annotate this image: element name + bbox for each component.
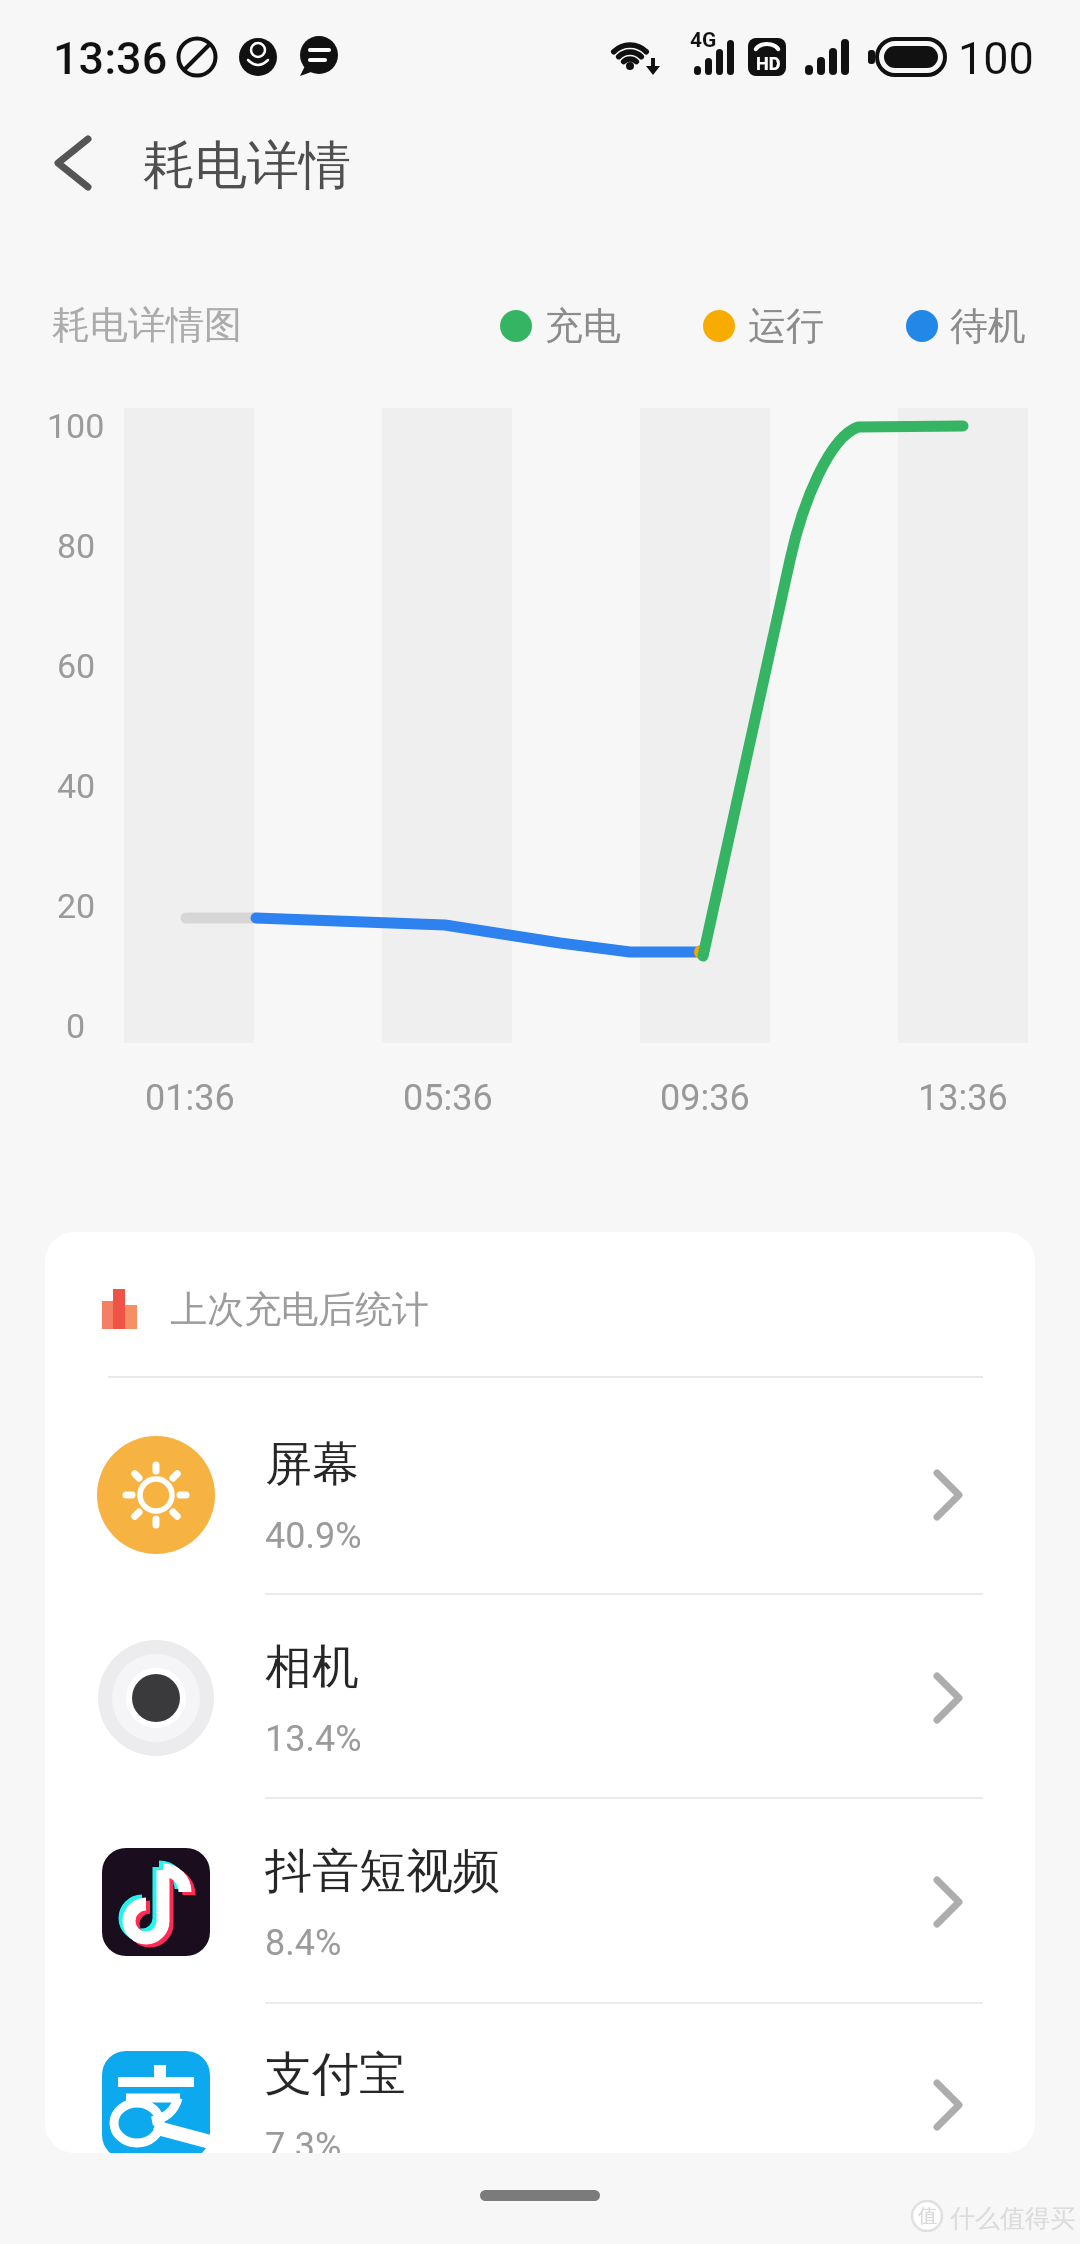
button[interactable] xyxy=(40,125,110,201)
staticText: 上次充电后统计 xyxy=(170,1286,429,1333)
staticText: 运行 xyxy=(748,302,824,350)
staticText: 13:36 xyxy=(53,32,168,82)
staticText: 05:36 xyxy=(403,1077,493,1119)
staticText: 4G xyxy=(690,28,717,52)
staticText: 抖音短视频 xyxy=(265,1842,500,1901)
button[interactable]: 屏幕 xyxy=(45,1394,1035,1596)
staticText: 支付宝 xyxy=(265,2045,406,2104)
staticText: 01:36 xyxy=(145,1077,235,1119)
staticText: 相机 xyxy=(265,1638,359,1697)
staticText: 40 xyxy=(57,766,96,806)
staticText: 20 xyxy=(57,886,96,926)
staticText: 100 xyxy=(958,32,1034,82)
staticText: 13:36 xyxy=(918,1077,1008,1119)
button[interactable]: 相机 xyxy=(45,1597,1035,1799)
button[interactable]: 支付宝 xyxy=(45,2004,1035,2153)
staticText: 待机 xyxy=(950,302,1026,350)
staticText: 09:36 xyxy=(660,1077,750,1119)
staticText: 80 xyxy=(57,526,96,566)
staticText: 屏幕 xyxy=(265,1435,359,1494)
staticText: 0 xyxy=(66,1006,86,1046)
staticText: 60 xyxy=(57,646,96,686)
staticText: 值 xyxy=(918,2204,937,2228)
staticText: 100 xyxy=(47,406,105,446)
staticText: 耗电详情图 xyxy=(52,301,242,349)
staticText: 8.4% xyxy=(265,1922,342,1964)
staticText: 耗电详情 xyxy=(143,133,351,193)
button[interactable]: 抖音短视频 xyxy=(45,1801,1035,2003)
staticText: 什么值得买 xyxy=(950,2203,1075,2231)
staticText: 13.4% xyxy=(265,1718,362,1760)
staticText: 40.9% xyxy=(265,1515,362,1557)
staticText: HD xyxy=(756,53,781,74)
staticText: 7.3% xyxy=(265,2125,342,2153)
staticText: 充电 xyxy=(545,302,621,350)
